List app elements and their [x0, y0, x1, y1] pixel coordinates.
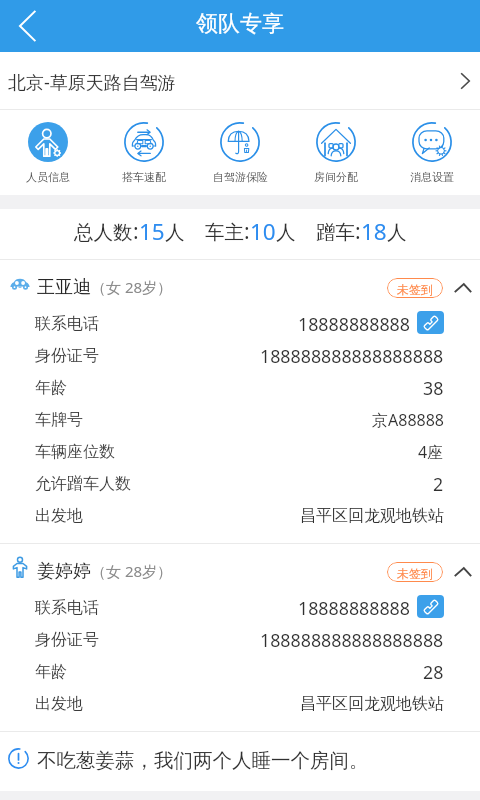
button[interactable]: 消息设置 [384, 110, 480, 195]
staticText: 车主 [205, 220, 244, 245]
staticText: 出发地 [35, 506, 83, 526]
staticText: 出发地 [35, 694, 83, 714]
staticText: 搭车速配 [122, 170, 166, 184]
button[interactable]: 人员信息 [0, 110, 96, 195]
staticText: 姜婷婷 [37, 560, 91, 583]
staticText: 车辆座位数 [35, 442, 115, 462]
staticText: 允许蹭车人数 [35, 474, 131, 494]
staticText: 王亚迪 [37, 276, 91, 299]
button[interactable]: 允许蹭车人数 [0, 466, 480, 498]
staticText: 18888888888 [298, 596, 410, 620]
staticText: 188888888888888888 [260, 628, 444, 652]
staticText: 车牌号 [35, 410, 83, 430]
staticText: 房间分配 [314, 170, 358, 184]
staticText: 年龄 [35, 662, 67, 682]
button[interactable]: 年龄 [0, 370, 480, 402]
button[interactable]: Call [417, 311, 444, 334]
staticText: 消息设置 [410, 170, 454, 184]
staticText: 未签到 [397, 566, 433, 581]
staticText: 自驾游保险 [213, 170, 268, 184]
button[interactable]: 年龄 [0, 654, 480, 686]
staticText: 蹭车 [316, 220, 355, 245]
staticText: 18888888888 [298, 312, 410, 336]
staticText: 10 [250, 216, 276, 247]
staticText: 总人数 [74, 220, 133, 245]
staticText: 身份证号 [35, 630, 99, 650]
button[interactable]: Back [0, 2, 48, 50]
staticText: : [244, 217, 250, 246]
staticText: 188888888888888888 [260, 344, 444, 368]
staticText: 38 [423, 376, 444, 400]
staticText: （女 28岁） [91, 561, 173, 581]
staticText: 昌平区回龙观地铁站 [300, 506, 444, 526]
button[interactable]: 身份证号 [0, 622, 480, 654]
button[interactable]: Collapse [455, 564, 471, 580]
staticText: 联系电话 [35, 314, 99, 334]
button[interactable]: 车牌号 [0, 402, 480, 434]
staticText: 联系电话 [35, 598, 99, 618]
button[interactable]: 车辆座位数 [0, 434, 480, 466]
staticText: : [133, 217, 139, 246]
staticText: 身份证号 [35, 346, 99, 366]
staticText: 人 [165, 220, 185, 245]
button[interactable]: Call [417, 595, 444, 618]
button[interactable]: 未签到 [387, 562, 443, 582]
button[interactable]: 联系电话 [0, 590, 480, 622]
staticText: 4座 [418, 441, 444, 463]
button[interactable]: 出发地 [0, 498, 480, 530]
staticText: 昌平区回龙观地铁站 [300, 694, 444, 714]
button[interactable]: 搭车速配 [96, 110, 192, 195]
button[interactable]: 未签到 [387, 278, 443, 298]
staticText: 京A88888 [372, 409, 444, 431]
staticText: 18 [361, 216, 387, 247]
button[interactable]: 身份证号 [0, 338, 480, 370]
button[interactable]: 出发地 [0, 686, 480, 718]
staticText: 领队专享 [196, 10, 284, 38]
button[interactable]: 房间分配 [288, 110, 384, 195]
button[interactable]: Collapse [455, 280, 471, 296]
staticText: 北京-草原天路自驾游 [8, 70, 461, 95]
button[interactable]: 姜婷婷 [0, 544, 480, 590]
staticText: 15 [139, 216, 165, 247]
button[interactable]: 联系电话 [0, 306, 480, 338]
staticText: 人 [276, 220, 296, 245]
staticText: 人 [387, 220, 407, 245]
staticText: 年龄 [35, 378, 67, 398]
staticText: （女 28岁） [91, 277, 173, 297]
staticText: : [355, 217, 361, 246]
button[interactable]: 北京-草原天路自驾游 [0, 52, 480, 109]
staticText: 人员信息 [26, 170, 70, 184]
staticText: 未签到 [397, 282, 433, 297]
button[interactable]: 自驾游保险 [192, 110, 288, 195]
staticText: 2 [433, 472, 444, 496]
button[interactable]: 王亚迪 [0, 260, 480, 306]
staticText: 不吃葱姜蒜，我们两个人睡一个房间。 [37, 748, 369, 773]
staticText: 28 [423, 660, 444, 684]
